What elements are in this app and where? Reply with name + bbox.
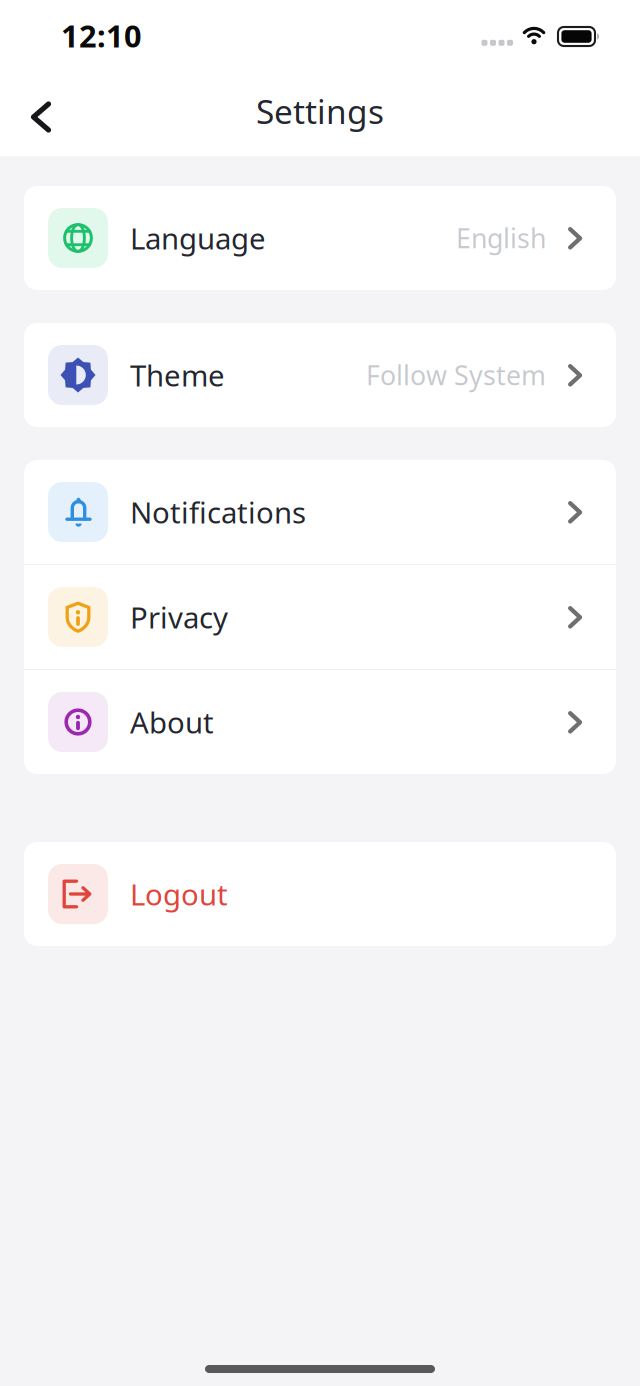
button[interactable]: Notifications <box>24 460 616 564</box>
staticText: Follow System <box>366 357 546 393</box>
button[interactable]: Back <box>0 83 52 138</box>
staticText: Notifications <box>130 492 306 531</box>
staticText: Theme <box>130 355 225 394</box>
staticText: Privacy <box>130 597 228 636</box>
staticText: Language <box>130 218 266 257</box>
staticText: English <box>456 220 546 256</box>
button[interactable]: Theme <box>24 323 616 427</box>
staticText: Logout <box>130 874 228 913</box>
staticText: About <box>130 702 214 741</box>
button[interactable]: Language <box>24 186 616 290</box>
button[interactable]: About <box>24 670 616 774</box>
button[interactable]: Privacy <box>24 565 616 669</box>
staticText: Settings <box>256 89 384 133</box>
staticText: 12:10 <box>61 15 142 56</box>
button[interactable]: Logout <box>24 842 616 946</box>
